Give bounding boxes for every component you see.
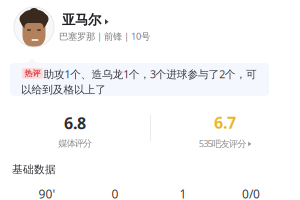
button[interactable]: 6.7 bbox=[150, 112, 300, 150]
staticText: 0/0 bbox=[242, 186, 260, 200]
staticText: 535吧友评分 bbox=[199, 137, 246, 150]
staticText: 助攻1个、造乌龙1个，3个进球参与了2个，可 以给到及格以上了 bbox=[21, 67, 257, 96]
staticText: 90' bbox=[38, 186, 55, 200]
staticText: 亚马尔 bbox=[62, 12, 101, 28]
staticText: 6.7 bbox=[214, 112, 236, 133]
staticText: 0 bbox=[111, 186, 118, 200]
staticText: 6.8 bbox=[64, 112, 86, 134]
staticText: 巴塞罗那 | 前锋 | 10号 bbox=[59, 30, 150, 42]
staticText: 热评 bbox=[24, 68, 40, 78]
staticText: 1 bbox=[179, 186, 186, 200]
staticText: 媒体评分 bbox=[58, 138, 92, 149]
staticText: 基础数据 bbox=[12, 163, 56, 176]
button[interactable]: 亚马尔 bbox=[14, 7, 294, 47]
